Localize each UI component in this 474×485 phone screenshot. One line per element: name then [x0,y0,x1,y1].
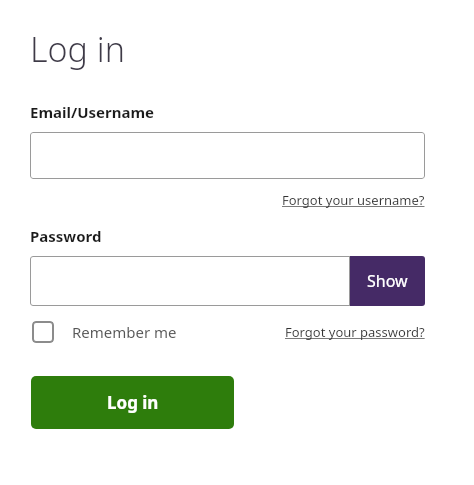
button[interactable]: Forgot your username? [282,190,425,210]
button[interactable]: Remember me [30,319,181,345]
staticText: Forgot your password? [285,323,425,341]
staticText: Log in [107,391,159,414]
staticText: Show [367,270,408,292]
staticText: Password [30,226,102,246]
button[interactable]: Log in [31,376,234,429]
button[interactable]: Password input field [30,256,350,306]
button[interactable]: Email or username input field [30,132,425,179]
button[interactable]: Forgot your password? [285,322,425,342]
staticText: Log in [30,26,125,72]
staticText: Remember me [72,322,177,342]
button[interactable]: Show [350,256,425,306]
staticText: Email/Username [30,102,155,122]
staticText: Forgot your username? [282,191,425,209]
